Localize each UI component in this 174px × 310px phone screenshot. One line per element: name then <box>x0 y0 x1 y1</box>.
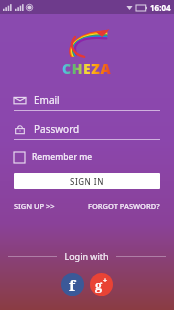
staticText: Password <box>34 122 80 136</box>
button[interactable]: Remember me <box>14 148 93 166</box>
button[interactable]: SIGN UP >> <box>14 199 55 213</box>
button[interactable]: Email <box>14 90 160 111</box>
button[interactable]: FORGOT PASWORD? <box>88 199 160 213</box>
staticText: FORGOT PASWORD? <box>88 201 160 211</box>
button[interactable]: Password <box>14 119 160 140</box>
staticText: Remember me <box>32 151 93 163</box>
staticText: CHEZA <box>62 59 112 78</box>
button[interactable]: Login with Facebook <box>61 273 84 296</box>
staticText: Email <box>34 93 60 107</box>
button[interactable]: SIGN IN <box>14 173 160 189</box>
staticText: 16:04 <box>150 2 171 13</box>
staticText: f <box>69 275 76 295</box>
staticText: g <box>95 276 103 294</box>
staticText: SIGN IN <box>70 176 104 187</box>
staticText: Login with <box>64 250 109 262</box>
staticText: + <box>103 276 108 286</box>
button[interactable]: Login with Google Plus <box>90 273 113 296</box>
staticText: SIGN UP >> <box>14 201 55 211</box>
